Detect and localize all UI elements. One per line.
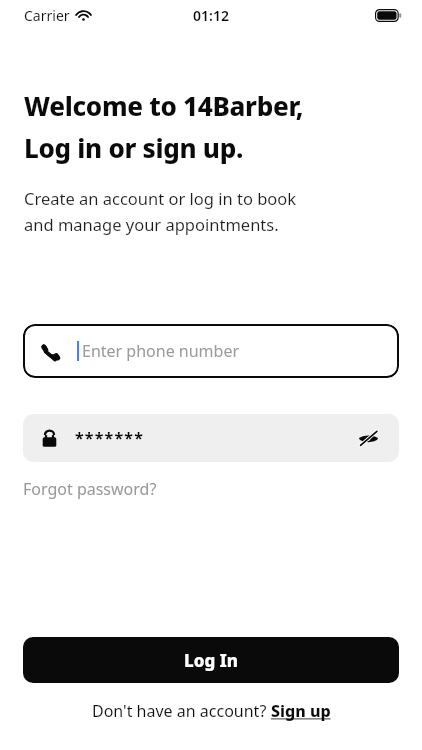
staticText: Don't have an account? xyxy=(92,700,271,722)
button[interactable]: Log In xyxy=(23,637,399,683)
staticText: Log In xyxy=(184,649,238,672)
staticText: Welcome to 14Barber, Log in or sign up. xyxy=(24,88,304,166)
button[interactable]: Forgot password? xyxy=(23,478,157,500)
staticText: Create an account or log in to book and … xyxy=(24,187,297,236)
button[interactable]: ******* xyxy=(23,414,399,462)
staticText: Forgot password? xyxy=(23,478,157,500)
button[interactable]: Show password xyxy=(355,425,381,451)
staticText: ******* xyxy=(75,427,145,449)
staticText: Sign up xyxy=(271,700,331,722)
button[interactable]: Enter phone number xyxy=(23,324,399,378)
staticText: Enter phone number xyxy=(82,340,240,362)
button[interactable]: Sign up xyxy=(271,700,331,722)
staticText: Carrier xyxy=(24,6,70,25)
staticText: 01:12 xyxy=(193,6,229,25)
